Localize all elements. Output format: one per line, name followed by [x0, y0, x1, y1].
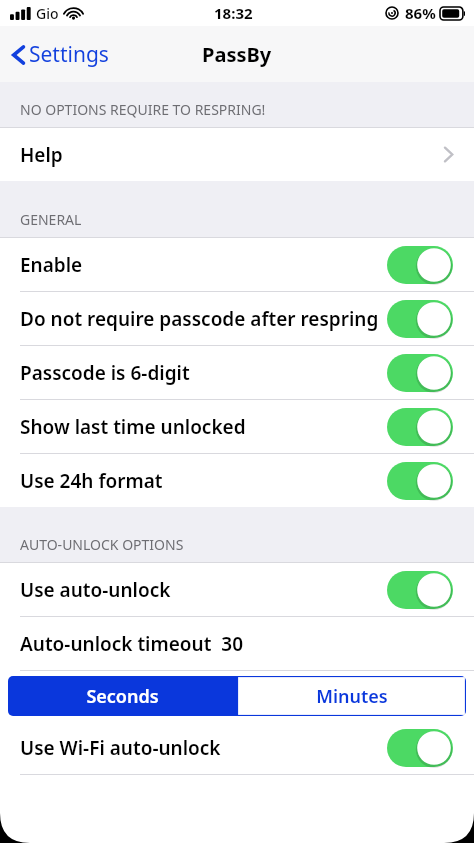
button[interactable]: Passcode is 6-digit — [0, 346, 474, 399]
staticText: GENERAL — [20, 210, 82, 229]
button[interactable]: Help — [0, 128, 474, 181]
staticText: Use Wi-Fi auto-unlock — [20, 735, 386, 761]
button[interactable]: Use Wi-Fi auto-unlock — [0, 721, 474, 774]
staticText: Show last time unlocked — [20, 414, 386, 440]
button[interactable]: Toggle on — [386, 299, 454, 339]
staticText: Minutes — [316, 684, 388, 709]
button[interactable]: Toggle on — [386, 570, 454, 610]
staticText: Passcode is 6-digit — [20, 360, 386, 386]
button[interactable]: Toggle on — [386, 728, 454, 768]
button[interactable]: Toggle on — [386, 353, 454, 393]
staticText: AUTO-UNLOCK OPTIONS — [20, 535, 184, 554]
button[interactable]: Toggle on — [386, 407, 454, 447]
staticText: Settings — [29, 40, 109, 69]
staticText: Use auto-unlock — [20, 577, 386, 603]
button[interactable]: Show last time unlocked — [0, 400, 474, 453]
button[interactable]: Settings — [0, 34, 121, 75]
staticText: Seconds — [86, 684, 159, 709]
button[interactable]: Seconds — [8, 676, 237, 716]
button[interactable]: Minutes — [237, 676, 466, 716]
staticText: Auto-unlock timeout 30 — [20, 631, 244, 657]
button[interactable]: Enable — [0, 238, 474, 291]
button[interactable]: Use 24h format — [0, 454, 474, 507]
button[interactable]: Toggle on — [386, 461, 454, 501]
button[interactable]: Toggle on — [386, 245, 454, 285]
staticText: 18:32 — [214, 3, 253, 23]
button[interactable]: Auto-unlock timeout 30 — [0, 617, 474, 670]
button[interactable]: Use auto-unlock — [0, 563, 474, 616]
staticText: 86% — [405, 3, 436, 23]
button[interactable]: Do not require passcode after respring — [0, 292, 474, 345]
staticText: Enable — [20, 252, 386, 278]
staticText: Gio — [36, 4, 59, 23]
staticText: NO OPTIONS REQUIRE TO RESPRING! — [20, 100, 266, 119]
staticText: PassBy — [202, 41, 272, 68]
staticText: Use 24h format — [20, 468, 386, 494]
staticText: Do not require passcode after respring — [20, 306, 386, 332]
staticText: Help — [20, 142, 63, 168]
